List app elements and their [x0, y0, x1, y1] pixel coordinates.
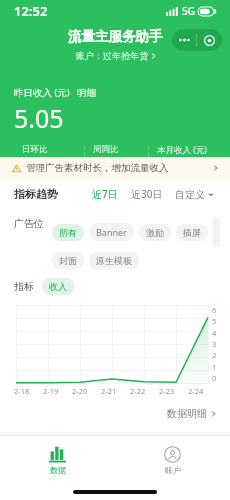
button[interactable]: 数据明细 [165, 407, 218, 420]
staticText: 5.05 [14, 101, 64, 135]
staticText: 数据明细 [167, 407, 207, 420]
staticText: 2-22 [130, 386, 146, 396]
staticText: 近30日 [131, 187, 163, 201]
staticText: 指标趋势 [14, 187, 58, 201]
staticText: 激励 [146, 227, 164, 238]
button[interactable]: 数据 [0, 436, 115, 484]
staticText: 封面 [59, 255, 77, 266]
staticText: 昨日收入 (元) [14, 86, 70, 99]
button[interactable]: 账户 [115, 436, 230, 484]
staticText: 自定义 [175, 188, 205, 201]
staticText: 原生模板 [96, 255, 132, 266]
staticText: 周同比 [93, 144, 119, 155]
button[interactable]: Banner [89, 223, 134, 241]
staticText: 1 [212, 362, 217, 372]
button[interactable]: 管理广告素材时长，增加流量收入 [0, 157, 230, 179]
staticText: 账户 [165, 465, 181, 475]
staticText: 管理广告素材时长，增加流量收入 [26, 162, 169, 174]
staticText: 指标 [14, 280, 34, 293]
staticText: 2-19 [43, 386, 59, 396]
staticText: 广告位 [14, 217, 44, 230]
staticText: 6 [212, 305, 217, 315]
button[interactable]: Close [197, 29, 222, 51]
staticText: 4 [212, 328, 217, 338]
staticText: 2-20 [72, 386, 88, 396]
staticText: 收入 [49, 281, 67, 292]
button[interactable]: 近30日 [128, 187, 166, 201]
button[interactable]: 插屏 [176, 224, 208, 241]
button[interactable]: 所有 [52, 224, 84, 241]
staticText: 插屏 [183, 227, 201, 238]
button[interactable]: 账户：过年抢年货 [76, 50, 156, 61]
staticText: 近7日 [92, 187, 118, 201]
button[interactable]: 封面 [52, 252, 84, 269]
button[interactable]: 明细 [77, 87, 96, 99]
button[interactable]: 激励 [139, 224, 171, 241]
staticText: Banner [96, 226, 127, 238]
staticText: 5G [182, 4, 195, 18]
staticText: 所有 [59, 227, 77, 238]
button[interactable]: 近7日 [89, 187, 121, 201]
staticText: 2 [212, 350, 217, 360]
button[interactable]: 收入 [42, 278, 74, 295]
staticText: 账户：过年抢年货 [76, 50, 148, 61]
staticText: 3 [212, 339, 217, 349]
staticText: 明细 [77, 87, 96, 99]
staticText: 2-21 [101, 386, 117, 396]
staticText: 数据 [50, 465, 66, 475]
staticText: 0 [212, 373, 217, 383]
staticText: 2-23 [159, 386, 175, 396]
button[interactable]: More options [172, 29, 196, 51]
staticText: 2-24 [188, 386, 204, 396]
button[interactable]: 自定义 [173, 188, 216, 201]
staticText: 12:52 [14, 2, 48, 20]
button[interactable]: 原生模板 [89, 252, 139, 269]
staticText: 流量主服务助手 [68, 28, 163, 45]
staticText: 日环比 [22, 144, 48, 155]
staticText: 2-18 [14, 386, 30, 396]
staticText: 5 [212, 316, 217, 326]
staticText: 本月收入 (元) [157, 144, 207, 156]
